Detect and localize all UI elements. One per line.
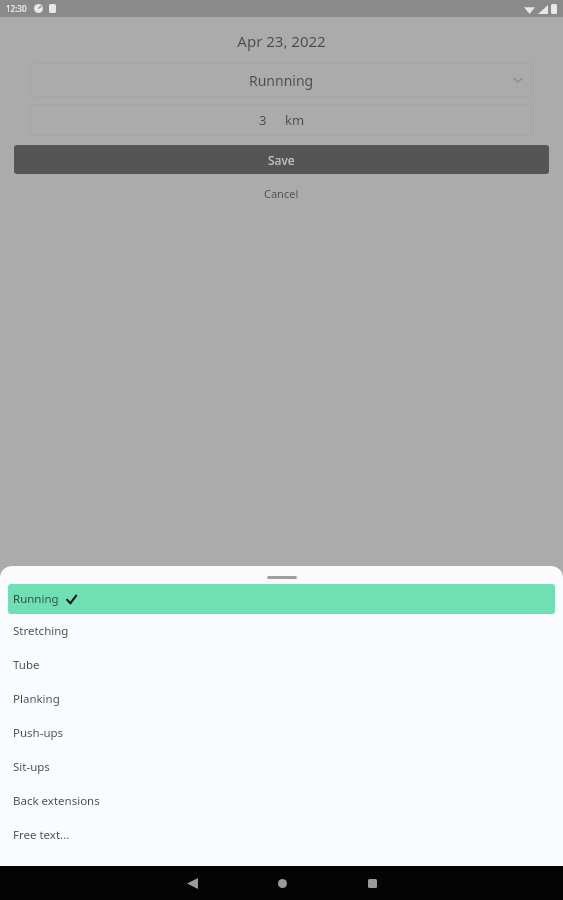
button[interactable]: Planking: [0, 682, 563, 716]
button[interactable]: Push-ups: [0, 716, 563, 750]
button[interactable]: Running: [8, 584, 555, 614]
staticText: Planking: [13, 691, 60, 707]
staticText: 12:30: [6, 3, 27, 14]
staticText: Back extensions: [13, 793, 100, 809]
staticText: 3: [259, 111, 267, 129]
staticText: Runnning: [249, 71, 314, 90]
button[interactable]: Free text...: [0, 818, 563, 852]
button[interactable]: Stretching: [0, 614, 563, 648]
staticText: Push-ups: [13, 725, 64, 741]
staticText: Apr 23, 2022: [0, 31, 563, 51]
staticText: Save: [268, 152, 295, 168]
button[interactable]: Cancel: [0, 180, 563, 206]
staticText: Sit-ups: [13, 759, 50, 775]
staticText: Free text...: [13, 827, 70, 843]
button[interactable]: Recent apps: [342, 866, 402, 900]
staticText: Tube: [13, 657, 40, 673]
button[interactable]: Sit-ups: [0, 750, 563, 784]
button[interactable]: Runnning: [30, 63, 533, 97]
button[interactable]: Back: [162, 866, 222, 900]
button[interactable]: Back extensions: [0, 784, 563, 818]
staticText: Running: [13, 591, 59, 607]
button[interactable]: Save: [14, 145, 549, 174]
staticText: Cancel: [264, 186, 299, 201]
staticText: km: [285, 111, 305, 129]
button[interactable]: 3: [30, 104, 533, 136]
button[interactable]: Tube: [0, 648, 563, 682]
staticText: Stretching: [13, 623, 69, 639]
button[interactable]: Home: [252, 866, 312, 900]
